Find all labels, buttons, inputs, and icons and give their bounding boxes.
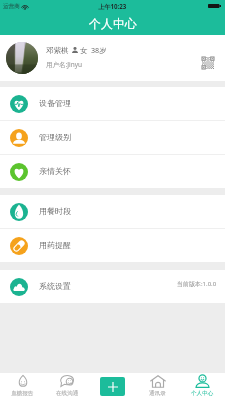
staticText: 在线沟通 (56, 390, 79, 397)
button[interactable]: 管理级别 (0, 121, 225, 154)
staticText: 亲情关怀 (39, 166, 71, 176)
button[interactable]: 用药提醒 (0, 229, 225, 262)
button[interactable]: 血糖报告 (0, 373, 45, 400)
button[interactable]: 添加 (100, 377, 125, 396)
button[interactable]: 邓紫棋 (0, 35, 225, 81)
staticText: 当前版本:1.0.0 (177, 280, 217, 288)
staticText: 通讯录 (149, 390, 166, 397)
staticText: 设备管理 (39, 98, 71, 108)
button[interactable]: 系统设置 (0, 270, 225, 303)
staticText: 用户名:Jinyu (46, 60, 83, 69)
staticText: 上午10:23 (98, 2, 127, 10)
button[interactable]: 亲情关怀 (0, 155, 225, 188)
staticText: 38岁 (91, 45, 107, 55)
staticText: 邓紫棋 (46, 46, 69, 55)
staticText: 运营商 (3, 3, 20, 10)
staticText: 系统设置 (39, 281, 71, 291)
button[interactable]: 设备管理 (0, 87, 225, 120)
button[interactable]: 用餐时段 (0, 195, 225, 228)
button[interactable]: 通讯录 (135, 373, 180, 400)
staticText: 女 (80, 46, 88, 55)
button[interactable]: 个人中心 (180, 373, 225, 400)
staticText: 用药提醒 (39, 240, 71, 250)
button[interactable]: 二维码 (200, 55, 216, 71)
staticText: 个人中心 (191, 390, 214, 397)
staticText: 用餐时段 (39, 206, 71, 216)
button[interactable]: 在线沟通 (45, 373, 90, 400)
staticText: 血糖报告 (11, 390, 34, 397)
staticText: 个人中心 (89, 16, 137, 31)
staticText: 管理级别 (39, 132, 71, 142)
